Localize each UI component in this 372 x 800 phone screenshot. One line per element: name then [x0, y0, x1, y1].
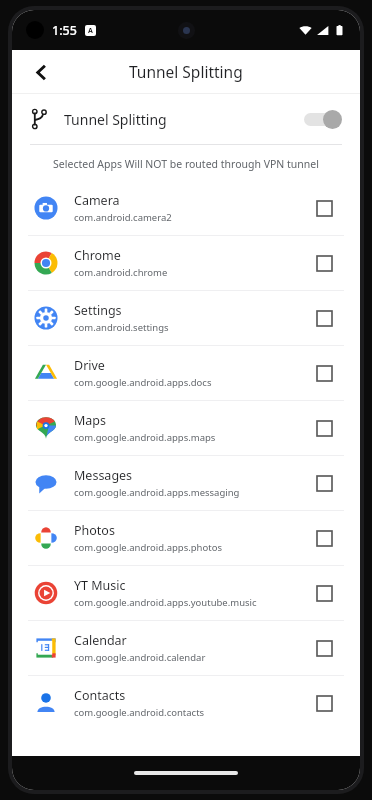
staticText: Photos — [74, 522, 115, 539]
staticText: com.google.android.apps.youtube.music — [74, 596, 257, 609]
button[interactable]: Calendar — [12, 621, 360, 675]
staticText: com.android.settings — [74, 321, 169, 334]
button[interactable]: Select YT Music — [310, 579, 338, 607]
button[interactable]: Select Contacts — [310, 689, 338, 717]
staticText: com.google.android.calendar — [74, 651, 206, 664]
staticText: com.google.android.apps.maps — [74, 431, 216, 444]
button[interactable]: Select Messages — [310, 469, 338, 497]
staticText: A — [88, 26, 93, 36]
staticText: Tunnel Splitting — [129, 61, 243, 82]
staticText: com.google.android.apps.messaging — [74, 486, 240, 499]
button[interactable]: Tunnel Splitting — [12, 94, 360, 144]
button[interactable]: Maps — [12, 401, 360, 455]
button[interactable]: Messages — [12, 456, 360, 510]
staticText: Selected Apps Will NOT be routed through… — [12, 157, 360, 171]
button[interactable]: Settings — [12, 291, 360, 345]
button[interactable]: Select Maps — [310, 414, 338, 442]
staticText: Maps — [74, 412, 107, 429]
button[interactable]: Select Chrome — [310, 249, 338, 277]
staticText: YT Music — [74, 577, 126, 594]
button[interactable]: Chrome — [12, 236, 360, 290]
button[interactable]: Select Calendar — [310, 634, 338, 662]
button[interactable]: YT Music — [12, 566, 360, 620]
button[interactable]: Select Settings — [310, 304, 338, 332]
staticText: com.android.camera2 — [74, 211, 172, 224]
button[interactable]: Tunnel Splitting toggle — [304, 108, 342, 130]
button[interactable]: Back — [22, 53, 60, 91]
staticText: com.google.android.apps.docs — [74, 376, 212, 389]
staticText: Camera — [74, 192, 120, 209]
staticText: Drive — [74, 357, 105, 374]
staticText: com.google.android.apps.photos — [74, 541, 222, 554]
staticText: Contacts — [74, 687, 126, 704]
staticText: com.android.chrome — [74, 266, 168, 279]
button[interactable]: Photos — [12, 511, 360, 565]
button[interactable]: Select Drive — [310, 359, 338, 387]
staticText: Settings — [74, 302, 122, 319]
button[interactable]: Select Camera — [310, 194, 338, 222]
button[interactable]: Select Photos — [310, 524, 338, 552]
staticText: com.google.android.contacts — [74, 706, 205, 719]
staticText: Messages — [74, 467, 133, 484]
staticText: 1:55 — [52, 22, 77, 39]
button[interactable]: Drive — [12, 346, 360, 400]
staticText: Chrome — [74, 247, 121, 264]
staticText: Tunnel Splitting — [64, 110, 167, 129]
button[interactable]: Camera — [12, 181, 360, 235]
button[interactable]: Contacts — [12, 676, 360, 730]
staticText: Calendar — [74, 632, 127, 649]
